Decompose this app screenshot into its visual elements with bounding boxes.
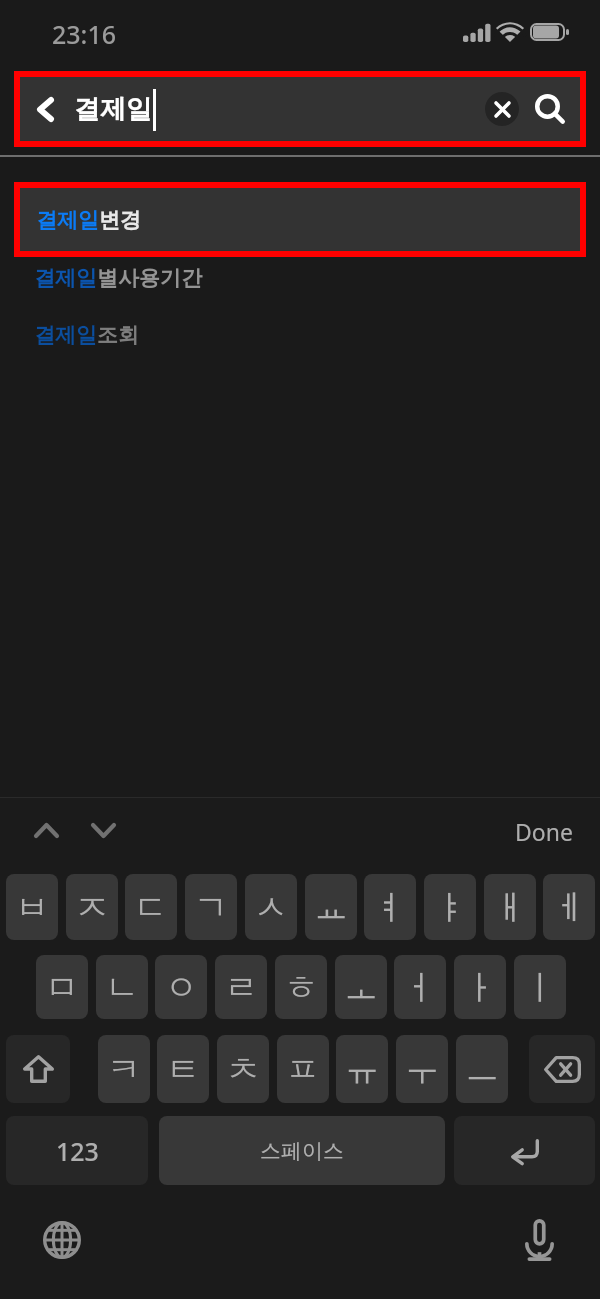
staticText: 결제일조회 xyxy=(34,322,139,348)
staticText: ㅗ xyxy=(344,966,378,1009)
staticText: ㅑ xyxy=(433,886,467,929)
staticText: ㄴ xyxy=(105,966,139,1009)
button[interactable]: ㅍ xyxy=(277,1035,329,1103)
button[interactable]: ㅅ xyxy=(245,874,297,940)
button[interactable]: Backspace xyxy=(529,1035,595,1103)
button[interactable]: ㄹ xyxy=(215,955,267,1019)
button[interactable]: ㅣ xyxy=(514,955,566,1019)
staticText: 결제일 xyxy=(74,93,152,126)
button[interactable]: ㅛ xyxy=(305,874,357,940)
staticText: ㅓ xyxy=(403,966,437,1009)
button[interactable]: ㅂ xyxy=(6,874,58,940)
button[interactable]: ㅐ xyxy=(484,874,536,940)
button[interactable]: ㅇ xyxy=(155,955,207,1019)
staticText: ㅕ xyxy=(373,886,407,929)
staticText: ㅇ xyxy=(164,966,198,1009)
button[interactable]: 스페이스 xyxy=(159,1116,445,1185)
button[interactable]: ㅎ xyxy=(275,955,327,1019)
button[interactable]: ㅓ xyxy=(394,955,446,1019)
staticText: ㅠ xyxy=(345,1048,379,1091)
staticText: ㅣ xyxy=(523,966,557,1009)
button[interactable]: ㅕ xyxy=(364,874,416,940)
button[interactable]: ㅏ xyxy=(454,955,506,1019)
button[interactable]: ㅋ xyxy=(98,1035,150,1103)
staticText: 결제일별사용기간 xyxy=(34,265,202,291)
button[interactable]: ㅡ xyxy=(456,1035,508,1103)
button[interactable]: ㅁ xyxy=(36,955,88,1019)
button[interactable]: Shift xyxy=(6,1035,70,1103)
button[interactable]: Change keyboard xyxy=(37,1215,87,1265)
button[interactable]: ㅊ xyxy=(217,1035,269,1103)
staticText: ㅛ xyxy=(314,886,348,929)
button[interactable]: Search xyxy=(524,81,576,139)
staticText: ㅔ xyxy=(552,886,586,929)
staticText: ㅊ xyxy=(226,1048,260,1091)
staticText: ㄷ xyxy=(134,886,168,929)
staticText: ㅈ xyxy=(75,886,109,929)
button[interactable]: ㅜ xyxy=(396,1035,448,1103)
staticText: ㅎ xyxy=(284,966,318,1009)
button[interactable]: Voice input xyxy=(514,1215,564,1265)
button[interactable]: ㅑ xyxy=(424,874,476,940)
staticText: ㅍ xyxy=(286,1048,320,1091)
button[interactable]: Done xyxy=(505,810,583,852)
staticText: ㅡ xyxy=(465,1048,499,1091)
staticText: ㅐ xyxy=(493,886,527,929)
button[interactable]: 123 xyxy=(6,1116,148,1185)
staticText: 결제일변경 xyxy=(36,207,141,233)
button[interactable]: ㅗ xyxy=(335,955,387,1019)
button[interactable]: Enter xyxy=(454,1116,595,1185)
button[interactable]: 결제일조회 xyxy=(0,307,600,363)
button[interactable]: ㅈ xyxy=(66,874,118,940)
staticText: Done xyxy=(515,816,573,847)
staticText: ㅏ xyxy=(463,966,497,1009)
button[interactable]: Clear xyxy=(476,80,528,138)
button[interactable]: ㄷ xyxy=(125,874,177,940)
staticText: ㄱ xyxy=(194,886,228,929)
button[interactable]: Next field xyxy=(78,805,128,855)
staticText: ㅂ xyxy=(15,886,49,929)
staticText: ㄹ xyxy=(224,966,258,1009)
button[interactable]: ㅔ xyxy=(543,874,595,940)
staticText: 23:16 xyxy=(52,17,117,51)
button[interactable]: ㄱ xyxy=(185,874,237,940)
button[interactable]: ㅌ xyxy=(157,1035,209,1103)
staticText: 스페이스 xyxy=(260,1138,344,1164)
button[interactable]: ㅠ xyxy=(336,1035,388,1103)
button[interactable]: Previous field xyxy=(21,805,71,855)
button[interactable]: 결제일별사용기간 xyxy=(0,250,600,306)
staticText: ㅋ xyxy=(107,1048,141,1091)
button[interactable]: ㄴ xyxy=(96,955,148,1019)
staticText: ㅌ xyxy=(166,1048,200,1091)
button[interactable]: 결제일변경 xyxy=(14,182,586,257)
staticText: ㅅ xyxy=(254,886,288,929)
button[interactable]: Back xyxy=(20,77,70,141)
staticText: ㅁ xyxy=(45,966,79,1009)
staticText: ㅜ xyxy=(405,1048,439,1091)
staticText: 123 xyxy=(56,1134,99,1168)
